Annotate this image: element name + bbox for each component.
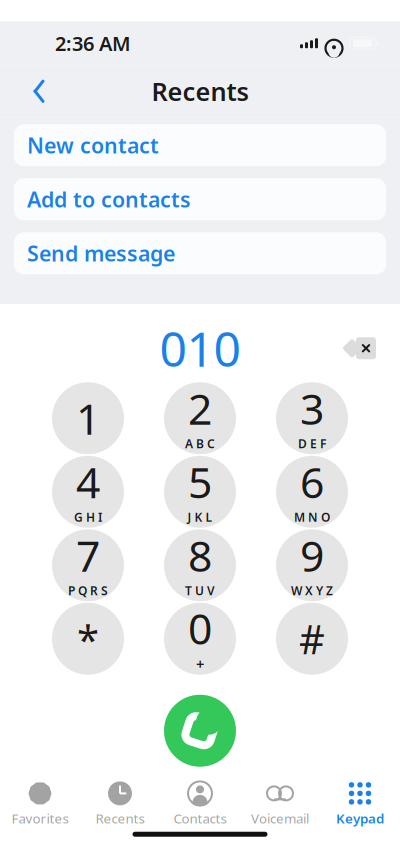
button[interactable]: * (52, 603, 124, 675)
staticText: Add to contacts (27, 185, 191, 213)
button[interactable]: Add to contacts (14, 178, 386, 220)
button[interactable]: 5 (164, 456, 236, 528)
staticText: 010 (159, 316, 240, 380)
staticText: # (299, 612, 325, 665)
staticText: New contact (27, 131, 159, 159)
button[interactable]: # (276, 603, 348, 675)
staticText: Contacts (173, 809, 226, 827)
staticText: 2 (188, 380, 212, 437)
button[interactable]: Back (17, 69, 61, 113)
staticText: J K L (187, 509, 212, 525)
button[interactable]: 0 (164, 603, 236, 675)
button[interactable]: Favorites (0, 782, 80, 826)
button[interactable]: 8 (164, 529, 236, 601)
staticText: 9 (300, 527, 324, 584)
button[interactable]: Voicemail (240, 782, 320, 826)
staticText: A B C (185, 436, 215, 451)
staticText: Favorites (11, 809, 68, 827)
button[interactable]: New contact (14, 124, 386, 166)
staticText: G H I (74, 509, 102, 525)
staticText: 1 (76, 390, 100, 447)
staticText: Recents (151, 74, 248, 108)
staticText: Recents (95, 809, 144, 827)
staticText: 4 (76, 453, 100, 510)
button[interactable]: 1 (52, 382, 124, 454)
button[interactable]: Call (164, 695, 236, 767)
staticText: Keypad (336, 809, 384, 827)
button[interactable]: Keypad (320, 782, 400, 826)
button[interactable]: 4 (52, 456, 124, 528)
staticText: 2:36 AM (55, 30, 131, 57)
button[interactable]: 7 (52, 529, 124, 601)
staticText: W X Y Z (291, 583, 333, 598)
staticText: 0 (188, 600, 212, 656)
button[interactable]: 2 (164, 382, 236, 454)
staticText: 6 (300, 453, 324, 510)
button[interactable]: Delete (336, 326, 388, 370)
staticText: + (196, 654, 204, 674)
staticText: T U V (185, 583, 215, 598)
staticText: 5 (188, 453, 212, 510)
staticText: M N O (294, 509, 330, 525)
button[interactable]: Recents (80, 782, 160, 826)
staticText: * (77, 612, 99, 665)
staticText: 3 (300, 380, 324, 437)
button[interactable]: Send message (14, 232, 386, 274)
staticText: Voicemail (251, 809, 309, 827)
button[interactable]: 9 (276, 529, 348, 601)
button[interactable]: Contacts (160, 782, 240, 826)
button[interactable]: 3 (276, 382, 348, 454)
button[interactable]: 6 (276, 456, 348, 528)
staticText: Send message (27, 239, 175, 267)
staticText: 7 (76, 527, 100, 584)
staticText: P Q R S (68, 583, 108, 598)
staticText: D E F (298, 436, 326, 451)
staticText: 8 (188, 527, 212, 584)
